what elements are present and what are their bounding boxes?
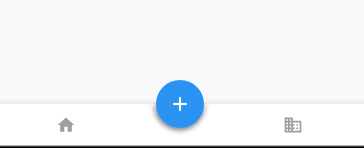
button[interactable]: Add <box>156 80 204 128</box>
button[interactable]: Home <box>42 104 90 145</box>
button[interactable]: Business <box>269 104 317 145</box>
